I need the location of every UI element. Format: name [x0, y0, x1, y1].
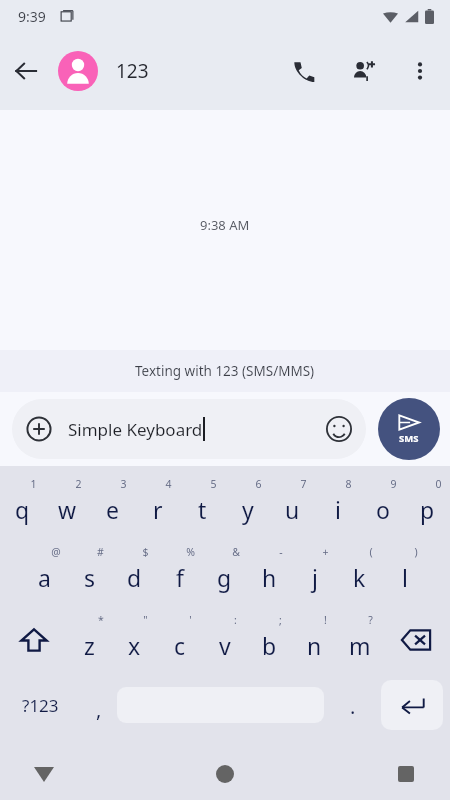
button[interactable]: 6 [225, 470, 270, 538]
staticText: : [234, 613, 237, 627]
staticText: Texting with 123 (SMS/MMS) [135, 362, 315, 380]
staticText: ; [279, 613, 282, 627]
button[interactable]: ) [382, 538, 427, 606]
staticText: z [84, 630, 95, 661]
staticText: k [353, 562, 366, 593]
button[interactable]: 2 [45, 470, 90, 538]
button[interactable]: Back [0, 748, 150, 800]
staticText: d [127, 562, 142, 593]
button[interactable]: . [324, 674, 381, 736]
button[interactable]: Send SMS [378, 398, 440, 460]
staticText: ! [324, 613, 327, 627]
button[interactable]: 123 [58, 51, 149, 91]
staticText: ( [369, 545, 373, 559]
staticText: f [176, 562, 184, 593]
staticText: c [174, 630, 186, 661]
button[interactable]: , [80, 674, 117, 736]
button[interactable]: Back [0, 45, 52, 97]
button[interactable]: " [112, 606, 157, 674]
button[interactable]: 9 [360, 470, 405, 538]
staticText: ?123 [22, 694, 59, 717]
button[interactable]: Backspace [382, 606, 450, 674]
staticText: y [242, 494, 254, 525]
staticText: p [420, 494, 435, 525]
staticText: q [15, 494, 30, 525]
staticText: % [186, 545, 195, 559]
staticText: i [335, 494, 341, 525]
button[interactable]: 1 [0, 470, 45, 538]
staticText: . [350, 693, 356, 720]
staticText: ? [368, 613, 373, 627]
staticText: t [198, 494, 207, 525]
button[interactable]: 8 [315, 470, 360, 538]
staticText: m [349, 630, 371, 661]
button[interactable]: + [292, 538, 337, 606]
button[interactable]: Add contact [340, 47, 388, 95]
button[interactable]: $ [112, 538, 157, 606]
staticText: u [285, 494, 300, 525]
staticText: ' [189, 613, 192, 627]
button[interactable]: Enter [381, 680, 443, 730]
button[interactable]: * [67, 606, 112, 674]
staticText: 5 [210, 477, 217, 491]
staticText: & [232, 545, 240, 559]
button[interactable]: # [67, 538, 112, 606]
staticText: h [262, 562, 277, 593]
button[interactable]: ?123 [0, 674, 80, 736]
button[interactable]: Recent apps [300, 748, 450, 800]
staticText: o [376, 494, 390, 525]
staticText: - [279, 545, 283, 559]
button[interactable]: Shift [0, 606, 67, 674]
button[interactable]: ? [337, 606, 382, 674]
button[interactable]: ! [292, 606, 337, 674]
button[interactable]: ( [337, 538, 382, 606]
staticText: $ [142, 545, 149, 559]
button[interactable]: 5 [180, 470, 225, 538]
staticText: SMS [399, 432, 419, 445]
button[interactable]: Home [150, 748, 300, 800]
staticText: ) [414, 545, 418, 559]
staticText: v [219, 630, 231, 661]
staticText: 123 [116, 58, 149, 84]
staticText: 3 [120, 477, 127, 491]
staticText: 9:38 AM [200, 216, 250, 234]
button[interactable]: 4 [135, 470, 180, 538]
staticText: x [128, 630, 141, 661]
button[interactable]: : [202, 606, 247, 674]
staticText: + [322, 545, 329, 559]
button[interactable]: 7 [270, 470, 315, 538]
button[interactable]: 0 [405, 470, 450, 538]
staticText: s [84, 562, 96, 593]
staticText: 1 [30, 477, 37, 491]
staticText: 9:39 [18, 7, 46, 26]
button[interactable]: 3 [90, 470, 135, 538]
staticText: 0 [435, 477, 442, 491]
button[interactable]: - [247, 538, 292, 606]
staticText: @ [51, 545, 61, 559]
staticText: * [98, 613, 104, 627]
staticText: l [402, 562, 408, 593]
button[interactable]: ' [157, 606, 202, 674]
button[interactable]: & [202, 538, 247, 606]
staticText: " [143, 613, 148, 627]
button[interactable]: % [157, 538, 202, 606]
staticText: e [106, 494, 119, 525]
staticText: b [262, 630, 277, 661]
staticText: 7 [300, 477, 307, 491]
staticText: , [96, 696, 102, 723]
staticText: g [217, 562, 232, 593]
staticText: 6 [255, 477, 262, 491]
staticText: Simple Keyboard [68, 418, 203, 441]
button[interactable]: @ [22, 538, 67, 606]
button[interactable]: ; [247, 606, 292, 674]
staticText: 2 [75, 477, 82, 491]
button[interactable]: Simple Keyboard [12, 399, 366, 459]
staticText: 4 [165, 477, 172, 491]
button[interactable]: Call [280, 47, 328, 95]
staticText: a [38, 562, 51, 593]
staticText: j [312, 562, 318, 593]
staticText: n [307, 630, 322, 661]
staticText: 9 [390, 477, 397, 491]
button[interactable]: More options [396, 47, 444, 95]
